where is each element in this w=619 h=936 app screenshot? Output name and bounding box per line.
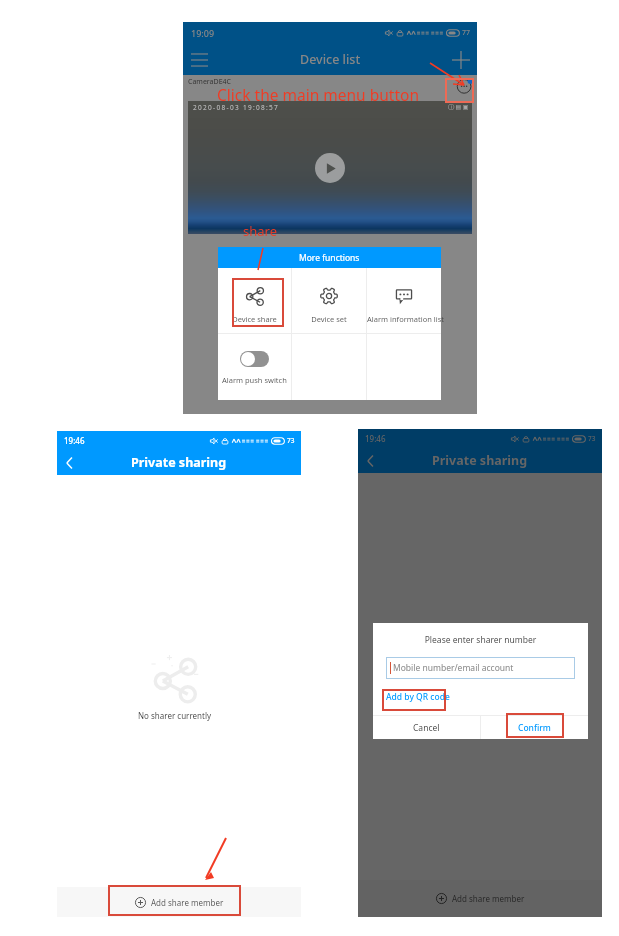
staticText: Add by QR code — [386, 691, 450, 703]
staticText: Add share member — [452, 893, 525, 904]
staticText: 73 — [588, 434, 596, 443]
staticText: Add share member — [151, 897, 224, 908]
staticText: ⓘ ▤ ▣ — [448, 103, 469, 111]
button[interactable]: Alarm push switch — [218, 334, 291, 400]
staticText: Private sharing — [131, 454, 227, 471]
button[interactable]: Add share member — [358, 880, 602, 917]
staticText: 19:46 — [64, 435, 85, 446]
staticText: Device list — [300, 51, 361, 68]
staticText: 77 — [462, 28, 471, 38]
staticText: No sharer currently — [138, 710, 212, 721]
staticText: 19:46 — [365, 433, 386, 444]
staticText: share — [243, 222, 277, 240]
button[interactable]: Add by QR code — [386, 691, 450, 703]
button[interactable]: Device share — [218, 268, 291, 333]
button[interactable]: Device set — [292, 268, 366, 333]
staticText: 73 — [287, 436, 295, 445]
button[interactable]: Menu — [189, 50, 209, 70]
button[interactable]: Play — [315, 153, 345, 183]
staticText: Click the main menu button — [217, 84, 419, 105]
staticText: Device share — [232, 314, 277, 324]
staticText: Confirm — [518, 722, 551, 734]
staticText: Alarm information list — [367, 314, 441, 324]
staticText: More functions — [299, 252, 360, 264]
staticText: 2020-08-03 19:08:57 — [193, 103, 280, 112]
button[interactable]: Add device — [451, 50, 471, 70]
button[interactable]: Add share member — [57, 887, 301, 917]
staticText: Alarm push switch — [222, 375, 287, 385]
button[interactable]: Back — [61, 454, 78, 471]
button[interactable]: Back — [362, 452, 379, 469]
staticText: Mobile number/email account — [393, 662, 514, 674]
staticText: Device set — [311, 314, 347, 324]
button[interactable]: Cancel — [373, 716, 480, 739]
staticText: 19:09 — [191, 27, 215, 39]
staticText: Please enter sharer number — [373, 634, 588, 646]
button[interactable]: More functions — [456, 77, 474, 95]
staticText: Cancel — [413, 722, 440, 734]
staticText: Private sharing — [432, 452, 528, 469]
staticText: CameraDE4C — [188, 77, 231, 87]
button[interactable]: Confirm — [481, 716, 588, 739]
button[interactable]: Alarm information list — [367, 268, 441, 333]
